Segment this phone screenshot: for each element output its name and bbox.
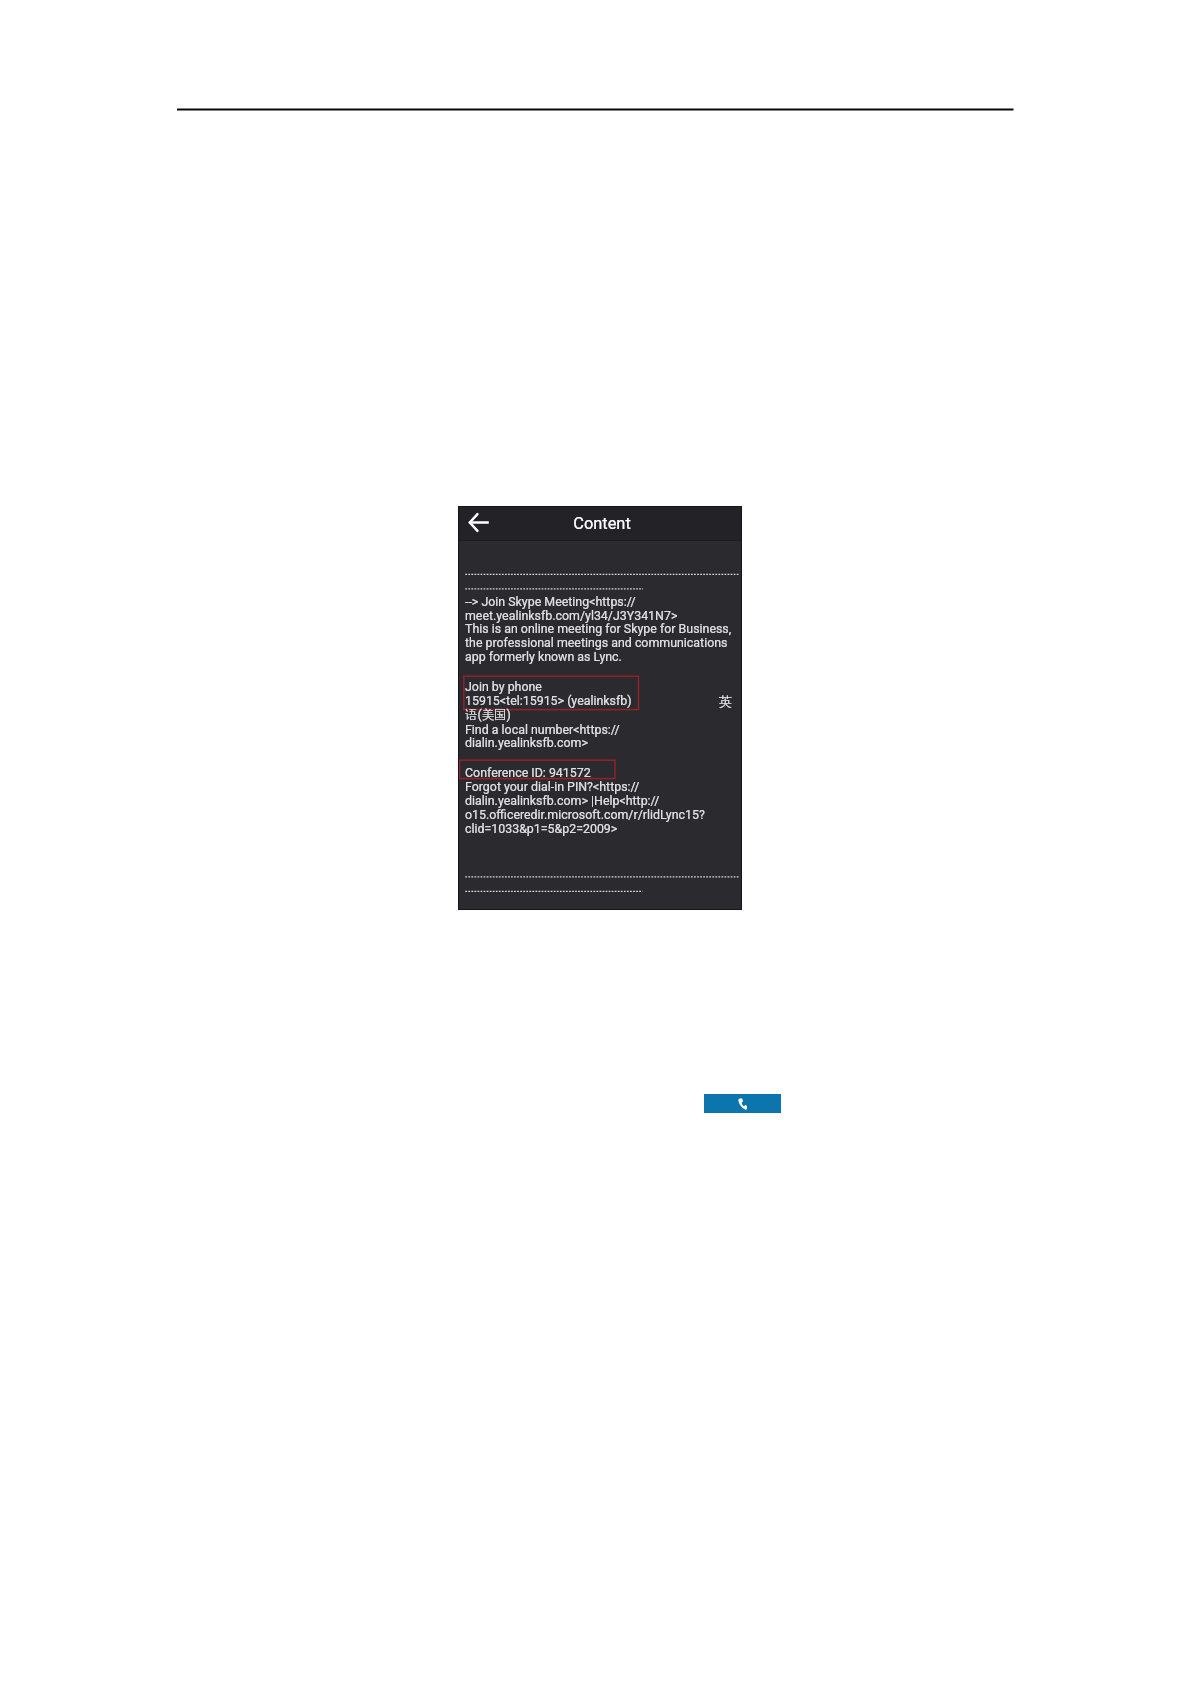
staticText: 15915<tel:15915> (yealinksfb) [465,693,632,708]
staticText: 语(美国) [465,707,511,723]
staticText: app formerly known as Lync. [465,649,622,664]
staticText: Join by phone [465,679,542,694]
staticText: Content [460,514,744,533]
staticText: o15.officeredir.microsoft.com/r/rlidLync… [465,807,705,822]
staticText: dialin.yealinksfb.com> [465,735,588,750]
staticText: 英 [719,693,732,709]
staticText: Conference ID: 941572 [465,765,591,780]
staticText: --> Join Skype Meeting<https:// [465,594,636,609]
staticText: Forgot your dial-in PIN?<https:// [465,779,640,794]
staticText: clid=1033&p1=5&p2=2009> [465,821,618,836]
staticText: Find a local number<https:// [465,722,620,737]
button[interactable]: Call [704,1094,781,1113]
button[interactable]: Back [461,505,495,539]
staticText: This is an online meeting for Skype for … [465,621,732,636]
staticText: the professional meetings and communicat… [465,635,728,650]
staticText: dialin.yealinksfb.com> |Help<http:// [465,793,660,808]
staticText: meet.yealinksfb.com/yl34/J3Y341N7> [465,608,678,623]
